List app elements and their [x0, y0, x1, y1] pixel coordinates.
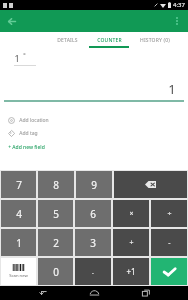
staticText: 2: [53, 236, 59, 250]
button[interactable]: Home: [85, 286, 103, 300]
button[interactable]: 6: [75, 200, 111, 227]
staticText: +: [129, 238, 134, 248]
staticText: 3: [90, 236, 96, 250]
button[interactable]: Add tag: [7, 129, 39, 138]
staticText: 5: [53, 207, 59, 221]
button[interactable]: ÷: [151, 200, 187, 227]
button[interactable]: +: [113, 229, 149, 256]
staticText: ÷: [167, 209, 172, 219]
button[interactable]: +1: [113, 258, 149, 285]
button[interactable]: 5: [38, 200, 73, 227]
button[interactable]: 4: [1, 200, 36, 227]
staticText: 6: [90, 207, 96, 221]
button[interactable]: 9: [76, 171, 112, 198]
staticText: 1: [16, 236, 22, 250]
button[interactable]: Navigate up: [3, 13, 19, 29]
staticText: .: [92, 267, 94, 277]
button[interactable]: 7: [1, 171, 36, 198]
staticText: 1: [14, 52, 20, 64]
button[interactable]: 1: [1, 229, 36, 256]
staticText: 1: [168, 80, 176, 98]
button[interactable]: COUNTER: [88, 32, 130, 48]
staticText: +1: [126, 266, 136, 277]
button[interactable]: -: [151, 229, 187, 256]
button[interactable]: 3: [75, 229, 111, 256]
staticText: COUNTER: [97, 37, 122, 44]
staticText: 4:37: [173, 1, 185, 9]
staticText: 4: [16, 207, 22, 221]
staticText: Scan new: [9, 273, 28, 279]
staticText: Add location: [19, 117, 49, 124]
staticText: DETAILS: [57, 37, 78, 44]
button[interactable]: Back: [34, 286, 52, 300]
button[interactable]: .: [75, 258, 111, 285]
button[interactable]: 2: [38, 229, 73, 256]
staticText: 8: [53, 178, 59, 192]
button[interactable]: 8: [38, 171, 74, 198]
staticText: HISTORY (0): [140, 37, 170, 44]
staticText: 0: [53, 265, 59, 279]
button[interactable]: Backspace: [114, 171, 187, 198]
button[interactable]: Add location: [7, 116, 50, 125]
button[interactable]: Recent apps: [137, 286, 155, 300]
button[interactable]: DETAILS: [46, 32, 88, 48]
staticText: -: [168, 238, 171, 248]
staticText: + Add new field: [8, 144, 45, 151]
staticText: 7: [16, 178, 22, 192]
button[interactable]: 0: [38, 258, 73, 285]
button[interactable]: More options: [169, 13, 185, 29]
staticText: ×: [129, 209, 134, 219]
staticText: ▪: [23, 52, 26, 56]
button[interactable]: HISTORY (0): [130, 32, 180, 48]
button[interactable]: ×: [113, 200, 149, 227]
staticText: 9: [91, 178, 97, 192]
button[interactable]: Scan new: [1, 258, 36, 285]
staticText: Add tag: [19, 130, 38, 137]
button[interactable]: Confirm: [151, 258, 187, 285]
button[interactable]: + Add new field: [7, 143, 46, 152]
